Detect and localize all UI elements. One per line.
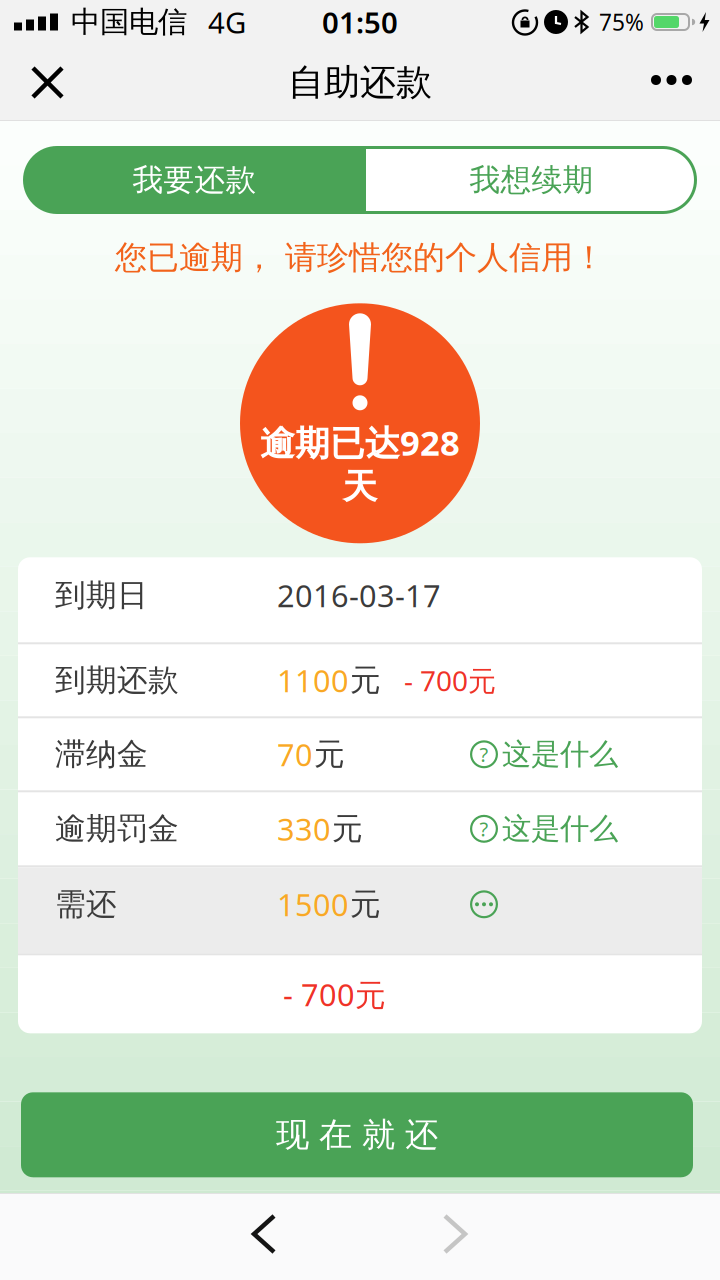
staticText: 需还 bbox=[55, 885, 117, 923]
staticText: 元 bbox=[350, 885, 381, 923]
staticText: - 700元 bbox=[283, 974, 386, 1015]
staticText: 滞纳金 bbox=[55, 735, 148, 773]
staticText: 元 bbox=[314, 735, 345, 773]
staticText: 这是什么 bbox=[502, 736, 618, 772]
button[interactable]: 我想续期 bbox=[366, 146, 697, 214]
staticText: ? bbox=[479, 815, 488, 842]
button[interactable] bbox=[651, 75, 720, 90]
staticText: 01:50 bbox=[322, 2, 398, 41]
staticText: 您已逾期， 请珍惜您的个人信用！ bbox=[115, 238, 605, 277]
staticText: 1100 bbox=[277, 660, 349, 701]
staticText: 中国电信 bbox=[71, 4, 187, 40]
staticText: 70 bbox=[277, 734, 313, 775]
staticText: - 700元 bbox=[404, 662, 496, 699]
staticText: ? bbox=[479, 741, 488, 768]
button[interactable] bbox=[0, 1194, 274, 1252]
staticText: 75% bbox=[599, 7, 644, 37]
staticText: 到期还款 bbox=[55, 661, 179, 699]
button[interactable]: ? bbox=[470, 811, 618, 847]
button[interactable]: 现 在 就 还 bbox=[21, 1092, 693, 1177]
button[interactable]: 我要还款 bbox=[23, 146, 366, 214]
staticText: 自助还款 bbox=[288, 60, 432, 105]
staticText: 4G bbox=[208, 2, 246, 41]
staticText: 现 在 就 还 bbox=[276, 1114, 438, 1155]
staticText: 2016-03-17 bbox=[277, 575, 441, 616]
button[interactable] bbox=[274, 1194, 465, 1252]
button[interactable] bbox=[470, 890, 498, 918]
staticText: 1500 bbox=[277, 884, 349, 925]
button[interactable] bbox=[0, 68, 62, 97]
staticText: 逾期已达928 bbox=[260, 419, 460, 465]
staticText: 我要还款 bbox=[132, 161, 256, 199]
staticText: 330 bbox=[277, 808, 331, 849]
staticText: 逾期罚金 bbox=[55, 810, 179, 848]
staticText: 元 bbox=[332, 810, 363, 848]
staticText: 天 bbox=[342, 465, 377, 508]
button[interactable]: ? bbox=[470, 736, 618, 772]
staticText: 我想续期 bbox=[469, 161, 593, 199]
staticText: 元 bbox=[350, 661, 381, 699]
staticText: 这是什么 bbox=[502, 811, 618, 847]
staticText: 到期日 bbox=[55, 576, 148, 614]
